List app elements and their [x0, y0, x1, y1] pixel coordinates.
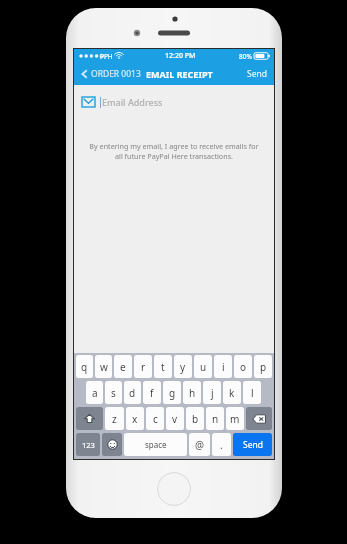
staticText: n	[212, 412, 219, 426]
staticText: g	[169, 386, 176, 400]
button[interactable]: y	[174, 355, 192, 378]
staticText: c	[153, 412, 158, 426]
staticText: f	[150, 386, 154, 400]
button[interactable]: Shift	[76, 407, 103, 430]
button[interactable]: x	[126, 407, 144, 430]
button[interactable]: Email Address	[74, 85, 274, 119]
staticText: x	[132, 412, 138, 426]
staticText: b	[192, 412, 199, 426]
button[interactable]: h	[183, 381, 201, 404]
button[interactable]: p	[254, 355, 272, 378]
button[interactable]: e	[114, 355, 132, 378]
staticText: p	[260, 360, 267, 374]
button[interactable]: z	[105, 407, 124, 430]
button[interactable]: r	[134, 355, 152, 378]
button[interactable]: ORDER 0013	[78, 66, 143, 82]
staticText: l	[251, 386, 254, 400]
button[interactable]: Send	[233, 433, 272, 456]
button[interactable]: @	[189, 433, 210, 456]
button[interactable]: t	[154, 355, 172, 378]
staticText: ORDER 0013	[91, 68, 141, 80]
staticText: j	[211, 386, 214, 400]
staticText: Send	[247, 68, 267, 80]
button[interactable]: a	[86, 381, 103, 404]
staticText: e	[120, 360, 126, 374]
staticText: 12:20 PM	[165, 51, 196, 61]
button[interactable]: u	[194, 355, 212, 378]
button[interactable]: w	[95, 355, 112, 378]
button[interactable]: l	[243, 381, 261, 404]
staticText: space	[145, 439, 167, 450]
button[interactable]: v	[166, 407, 184, 430]
button[interactable]: .	[212, 433, 231, 456]
staticText: r	[141, 360, 146, 374]
button[interactable]: Send	[244, 65, 270, 83]
button[interactable]: 123	[76, 433, 100, 456]
button[interactable]: c	[146, 407, 164, 430]
staticText: 80%	[239, 52, 252, 61]
button[interactable]: b	[186, 407, 204, 430]
staticText: h	[189, 386, 196, 400]
button[interactable]: j	[203, 381, 221, 404]
button[interactable]: s	[105, 381, 122, 404]
staticText: t	[161, 360, 165, 374]
staticText: @	[195, 438, 204, 452]
staticText: a	[92, 386, 98, 400]
button[interactable]: o	[234, 355, 252, 378]
button[interactable]: Emoji	[102, 433, 122, 456]
staticText: m	[230, 412, 240, 426]
staticText: Send	[243, 439, 263, 451]
staticText: z	[112, 412, 117, 426]
staticText: d	[129, 386, 136, 400]
button[interactable]: q	[76, 355, 93, 378]
button[interactable]: Backspace	[246, 407, 272, 430]
staticText: v	[172, 412, 178, 426]
staticText: Email Address	[102, 96, 163, 108]
button[interactable]: i	[214, 355, 232, 378]
staticText: q	[81, 360, 88, 374]
button[interactable]: space	[124, 433, 187, 456]
staticText: w	[100, 360, 108, 374]
staticText: y	[180, 360, 186, 374]
button[interactable]: n	[206, 407, 224, 430]
staticText: i	[222, 360, 225, 374]
staticText: 123	[82, 440, 95, 450]
staticText: PPH	[100, 52, 113, 61]
staticText: s	[111, 386, 116, 400]
staticText: EMAIL RECEIPT	[146, 68, 213, 80]
staticText: k	[229, 386, 235, 400]
staticText: .	[220, 438, 223, 452]
button[interactable]: f	[143, 381, 161, 404]
staticText: u	[200, 360, 207, 374]
button[interactable]: k	[223, 381, 241, 404]
button[interactable]: d	[124, 381, 141, 404]
staticText: o	[240, 360, 247, 374]
button[interactable]: g	[163, 381, 181, 404]
staticText: By entering my email, I agree to receive…	[86, 141, 262, 161]
button[interactable]: m	[226, 407, 244, 430]
